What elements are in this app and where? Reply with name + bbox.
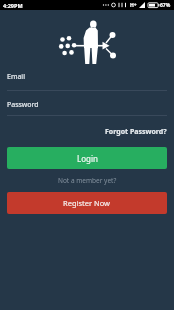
button[interactable]: Forgot Password? <box>105 127 167 137</box>
button[interactable]: Email <box>7 72 167 91</box>
button[interactable]: Register Now <box>7 192 167 214</box>
button[interactable]: Login <box>7 147 167 169</box>
staticText: 67% <box>160 2 171 9</box>
staticText: Forgot Password? <box>105 127 167 137</box>
staticText: H+ <box>130 2 137 9</box>
staticText: Password <box>7 100 39 110</box>
staticText: Not a member yet? <box>58 176 117 185</box>
staticText: Email <box>7 72 25 82</box>
button[interactable]: Password <box>7 100 167 116</box>
staticText: 4:29PM <box>3 2 23 9</box>
staticText: Register Now <box>63 198 111 208</box>
staticText: Login <box>77 153 98 164</box>
